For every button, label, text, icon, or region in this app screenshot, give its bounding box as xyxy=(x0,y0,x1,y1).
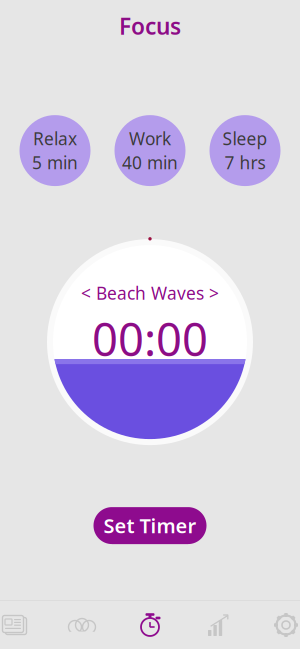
button[interactable]: Sleep xyxy=(209,115,280,186)
staticText: 00:00 xyxy=(92,308,208,369)
staticText: Relax xyxy=(33,127,77,150)
staticText: Work xyxy=(129,127,171,150)
staticText: < Beach Waves > xyxy=(81,281,219,304)
staticText: 5 min xyxy=(32,151,78,174)
button[interactable]: Stats xyxy=(188,603,248,647)
button[interactable]: Work xyxy=(114,115,185,186)
button[interactable]: Set Timer xyxy=(93,507,206,544)
button[interactable]: Settings xyxy=(256,603,300,647)
staticText: 7 hrs xyxy=(224,151,265,174)
staticText: Focus xyxy=(119,11,181,41)
staticText: 40 min xyxy=(122,151,178,174)
staticText: Sleep xyxy=(222,127,267,150)
button[interactable]: < Beach Waves > xyxy=(75,279,225,306)
staticText: Set Timer xyxy=(103,512,196,539)
button[interactable]: Relax xyxy=(19,115,90,186)
button[interactable]: Meditate xyxy=(52,603,112,647)
button[interactable]: News xyxy=(0,603,44,647)
button[interactable]: Timer xyxy=(120,603,180,647)
